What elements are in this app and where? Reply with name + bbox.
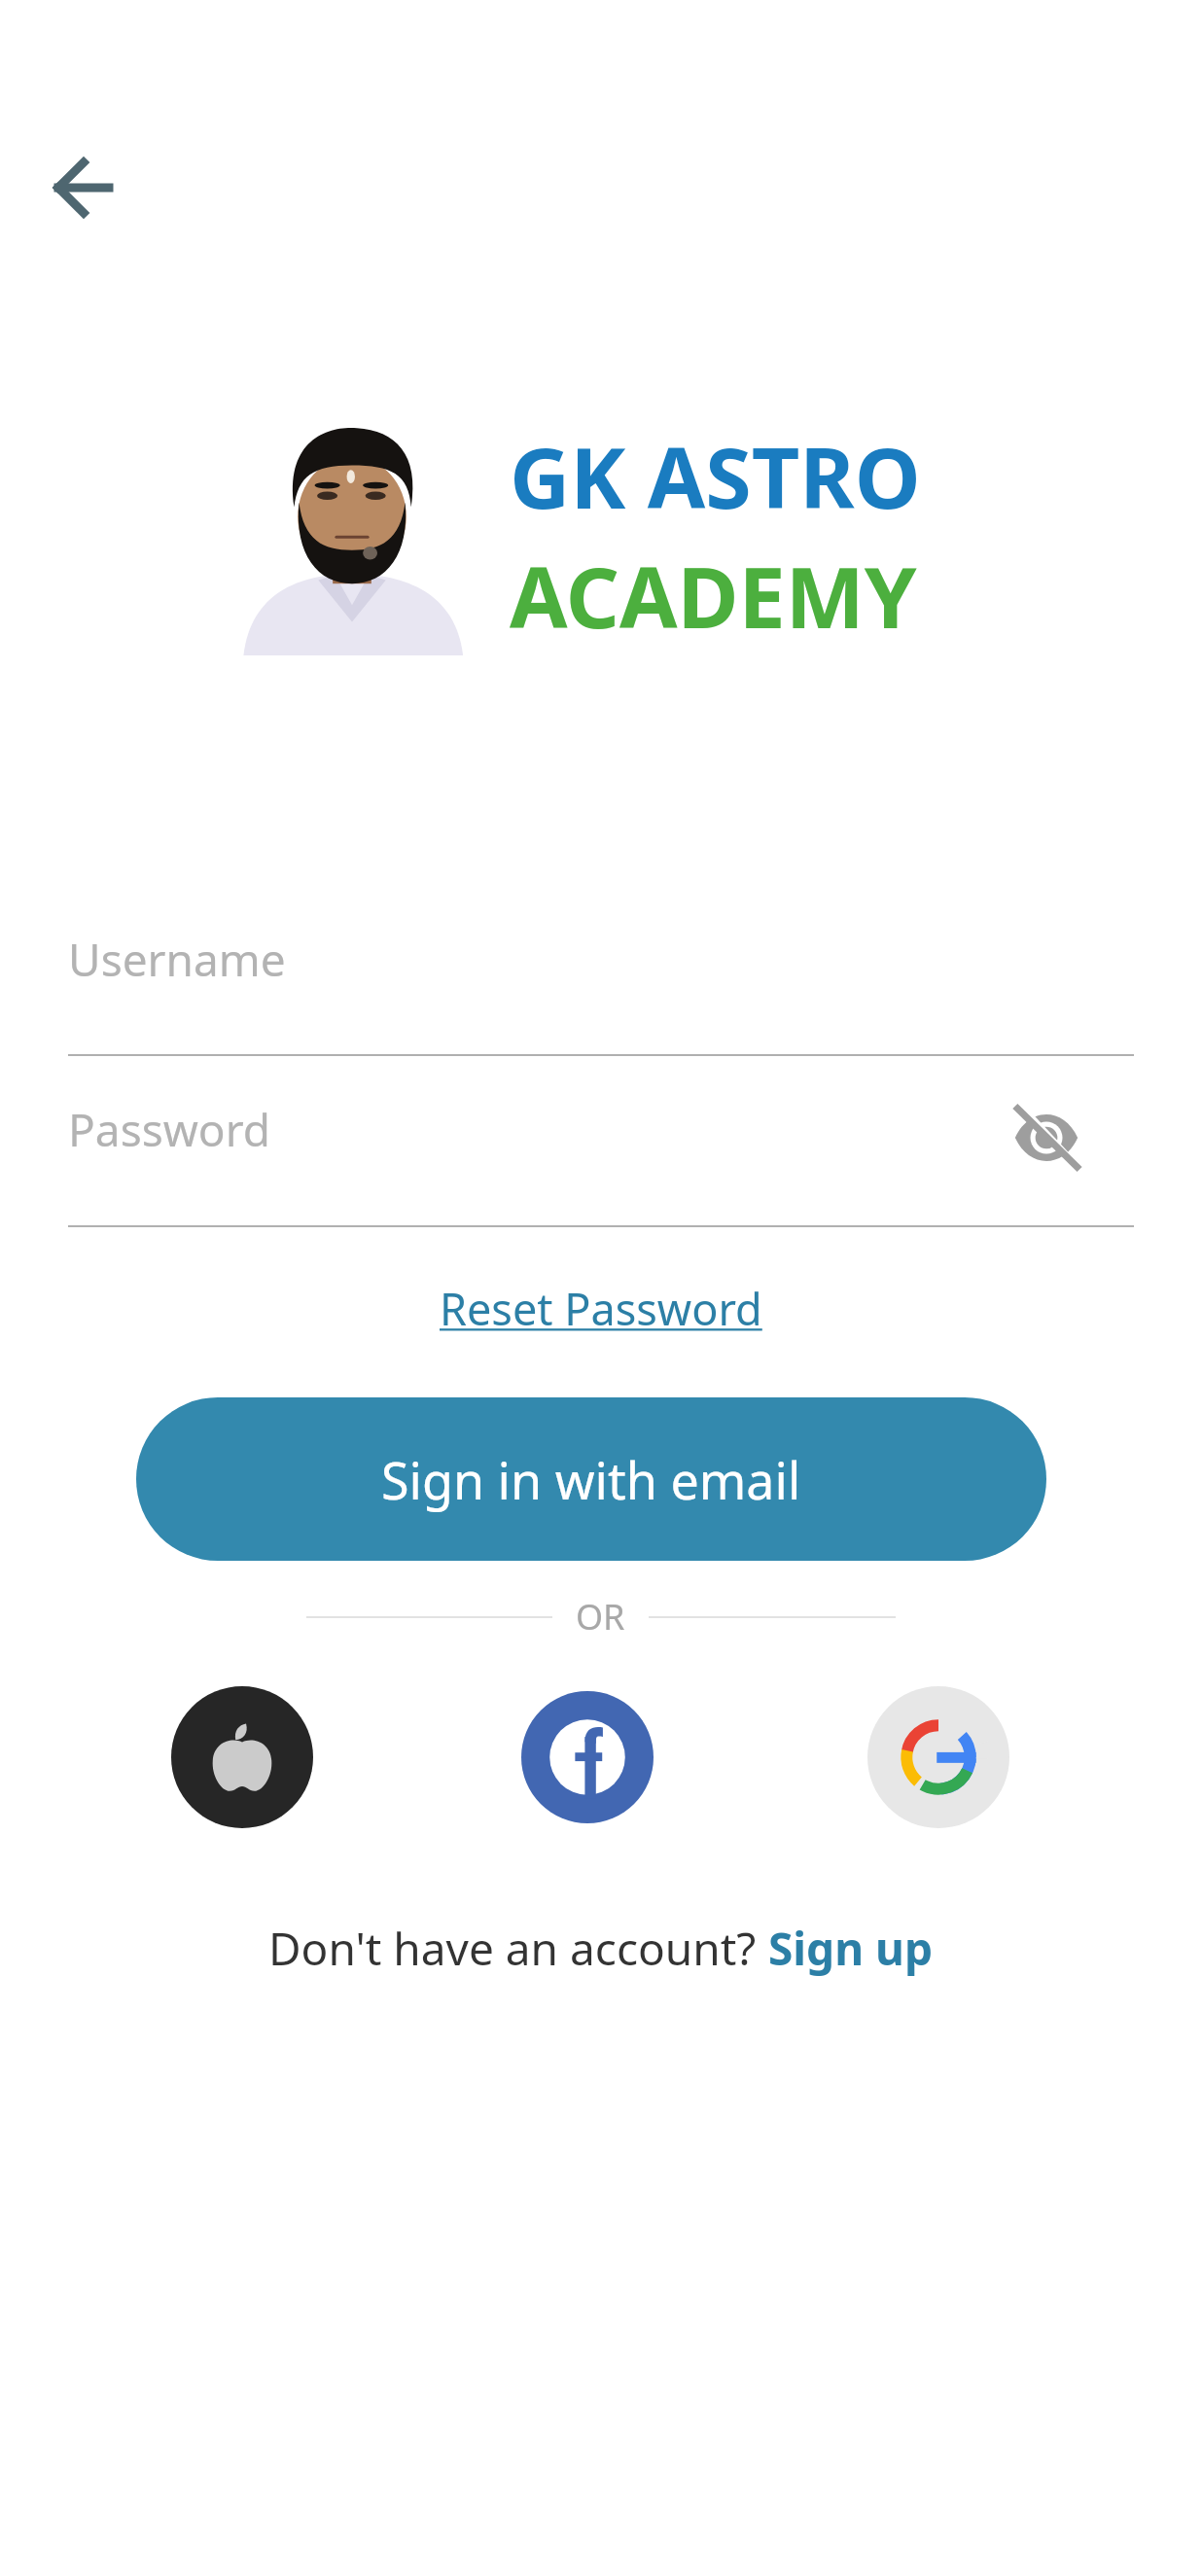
staticText: Sign up [768,1918,934,1979]
button[interactable]: Sign in with Google [867,1686,1009,1828]
staticText: Don't have an account? [268,1918,768,1979]
button[interactable]: Sign in with email [136,1397,1046,1561]
staticText: Sign in with email [381,1445,801,1514]
staticText: GK ASTRO [510,419,921,533]
button[interactable]: Back [21,136,124,239]
button[interactable]: Sign in with Apple [171,1686,313,1828]
staticText: OR [576,1593,625,1641]
button[interactable]: Sign in with Facebook [521,1691,654,1823]
staticText: ACADEMY [510,539,917,653]
button[interactable]: Sign up [768,1918,934,1979]
staticText: Username [68,929,286,990]
button[interactable]: Show password [1000,1091,1093,1184]
button[interactable]: Reset Password [440,1279,762,1338]
staticText: Reset Password [440,1279,762,1338]
staticText: Password [68,1099,271,1160]
